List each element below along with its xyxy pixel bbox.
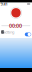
staticText: 00:00 xyxy=(9,22,22,29)
staticText: 9:41 xyxy=(0,1,7,7)
button[interactable]: Toggle xyxy=(25,32,31,36)
staticText: Setting xyxy=(3,29,14,35)
button[interactable]: Record xyxy=(10,7,22,19)
